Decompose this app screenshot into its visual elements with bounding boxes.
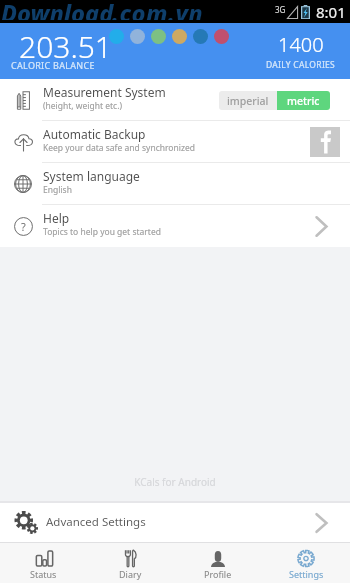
button[interactable]: Diary <box>87 543 174 583</box>
staticText: Topics to help you get started <box>43 226 161 238</box>
button[interactable]: Automatic Backup <box>0 121 350 163</box>
staticText: Automatic Backup <box>43 126 146 142</box>
staticText: Download <box>1 0 114 20</box>
button[interactable]: System language <box>0 163 350 205</box>
staticText: 8:01 <box>316 2 346 22</box>
staticText: Keep your data safe and synchronized <box>43 142 195 154</box>
button[interactable]: Share on Facebook <box>310 127 340 157</box>
staticText: Status <box>30 568 57 580</box>
staticText: 1400 <box>278 31 324 58</box>
staticText: Settings <box>289 568 324 580</box>
staticText: Diary <box>119 568 142 580</box>
button[interactable]: ? <box>0 205 350 247</box>
staticText: English <box>43 184 72 196</box>
staticText: CALORIC BALANCE <box>11 59 95 71</box>
button[interactable]: imperial <box>219 91 277 110</box>
staticText: Measurement System <box>43 84 166 100</box>
staticText: .com.vn <box>112 0 204 20</box>
button[interactable]: Status <box>0 543 87 583</box>
staticText: Profile <box>204 568 232 580</box>
button[interactable]: Measurement System <box>0 79 350 121</box>
staticText: System language <box>43 168 140 184</box>
staticText: DAILY CALORIES <box>266 59 336 71</box>
staticText: metric <box>287 94 320 108</box>
staticText: imperial <box>227 94 269 108</box>
staticText: Advanced Settings <box>46 514 146 530</box>
button[interactable]: Profile <box>174 543 262 583</box>
staticText: (height, weight etc.) <box>43 100 123 112</box>
button[interactable]: Advanced Settings <box>0 503 350 542</box>
staticText: 3G <box>275 4 286 15</box>
staticText: 203.51 <box>19 26 112 67</box>
staticText: KCals for Android <box>0 475 350 489</box>
button[interactable]: metric <box>277 91 330 110</box>
staticText: Help <box>43 210 70 226</box>
staticText: ? <box>21 219 26 234</box>
button[interactable]: Settings <box>262 543 350 583</box>
